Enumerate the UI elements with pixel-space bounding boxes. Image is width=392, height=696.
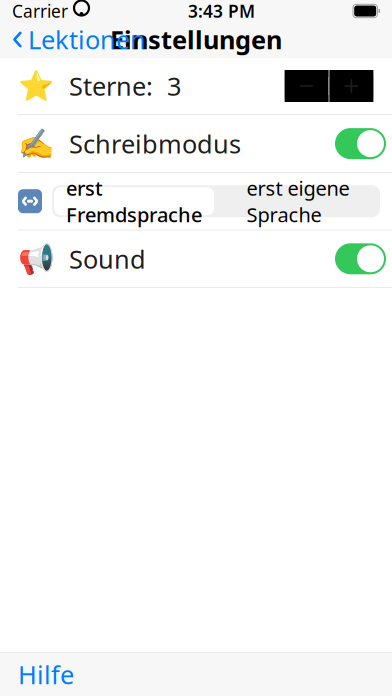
- staticText: Carrier: [12, 0, 68, 22]
- button[interactable]: Lektionen: [0, 17, 146, 62]
- staticText: ⭐️: [18, 69, 55, 103]
- staticText: 3:43 PM: [188, 0, 255, 22]
- staticText: Hilfe: [18, 658, 74, 691]
- button[interactable]: erst Fremdsprache: [52, 185, 216, 217]
- staticText: Lektionen: [28, 23, 146, 56]
- button[interactable]: Decrease: [285, 70, 329, 102]
- staticText: Schreibmodus: [55, 127, 241, 160]
- staticText: Einstellungen: [110, 23, 282, 56]
- button[interactable]: Hilfe: [0, 648, 92, 696]
- staticText: erst Fremdsprache: [66, 175, 202, 228]
- button[interactable]: Sound: [335, 243, 386, 274]
- staticText: [68, 0, 73, 22]
- staticText: ✍️: [18, 127, 55, 160]
- button[interactable]: Schreibmodus: [335, 128, 386, 159]
- button[interactable]: Increase: [329, 70, 373, 102]
- button[interactable]: erst eigene Sprache: [216, 185, 380, 217]
- staticText: Sterne: 3: [55, 69, 181, 103]
- staticText: 📢: [18, 242, 55, 275]
- staticText: erst eigene Sprache: [246, 175, 349, 228]
- staticText: Sound: [55, 242, 146, 276]
